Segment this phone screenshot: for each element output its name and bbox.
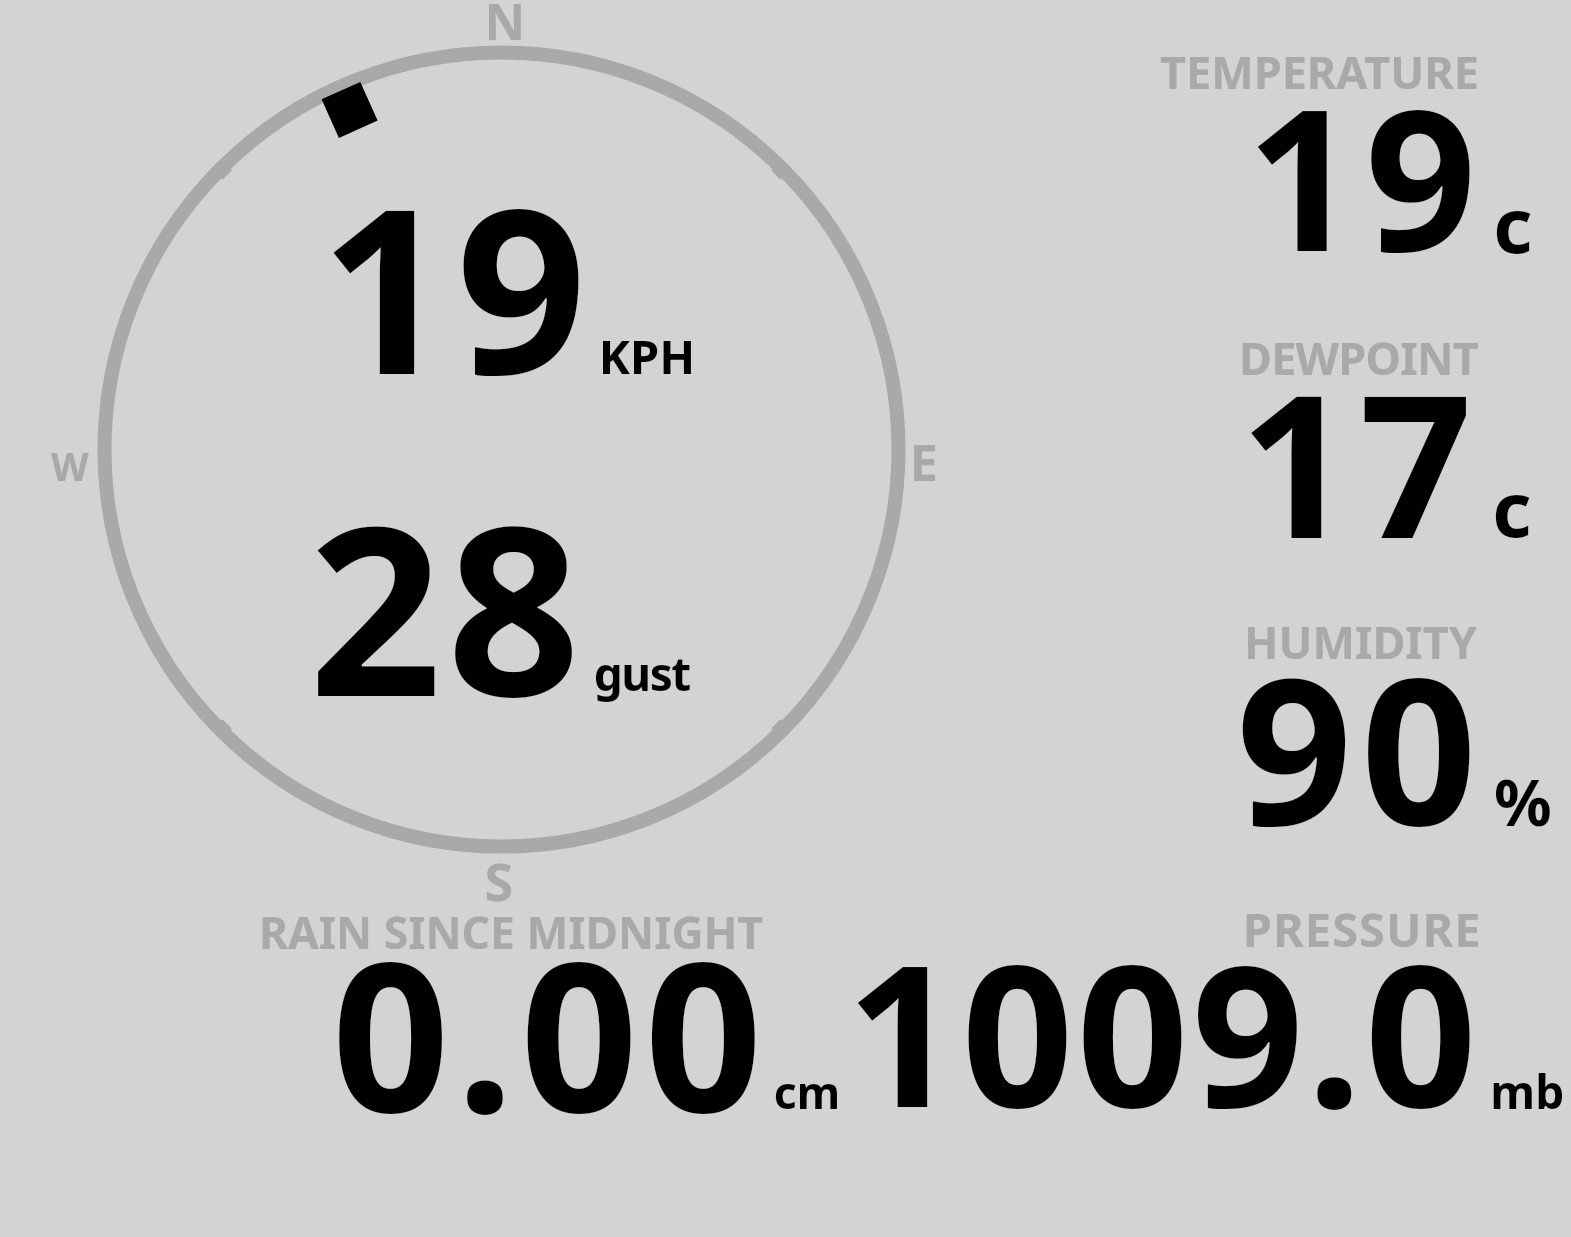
button[interactable]: Wind 19 KPH gusting 28, direction north … — [85, 30, 920, 870]
button[interactable]: Humidity 90 percent — [1150, 610, 1570, 870]
button[interactable]: Dew point 17 degrees Celsius — [1150, 325, 1570, 585]
button[interactable]: Temperature 19 degrees Celsius — [1150, 40, 1570, 310]
button[interactable]: Rain since midnight 0.00 cm — [255, 895, 845, 1120]
button[interactable]: Pressure 1009.0 mb — [845, 895, 1570, 1120]
